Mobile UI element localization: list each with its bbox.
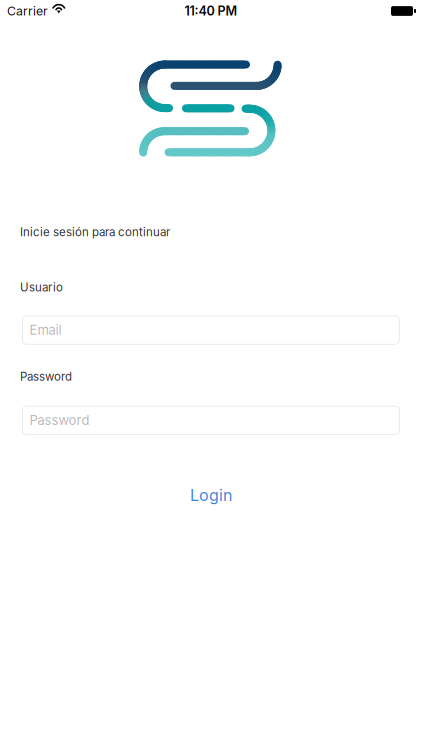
button[interactable]: Password [22, 406, 400, 435]
staticText: 11:40 PM [184, 3, 237, 19]
staticText: Inicie sesión para continuar [20, 225, 170, 239]
staticText: Usuario [20, 280, 63, 294]
staticText: Email [29, 322, 61, 338]
staticText: Login [190, 485, 232, 505]
staticText: Password [29, 412, 89, 428]
staticText: Password [20, 369, 72, 383]
staticText: Carrier [7, 4, 48, 18]
button[interactable]: Login [141, 484, 281, 506]
button[interactable]: Email [22, 315, 400, 345]
